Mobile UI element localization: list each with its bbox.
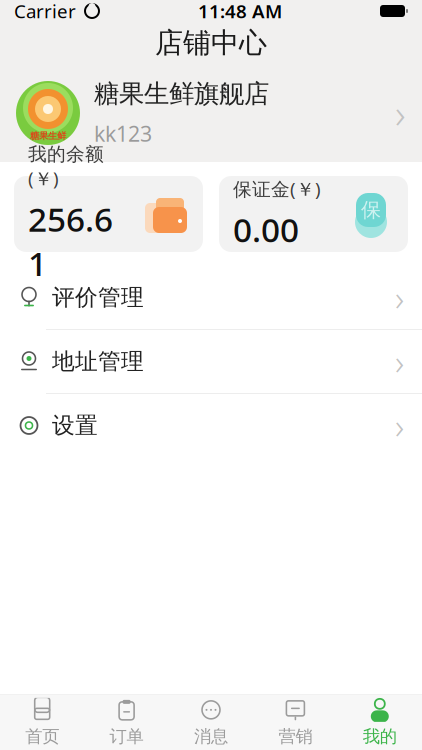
staticText: 首页 <box>25 726 59 747</box>
staticText: 我的余额(￥) <box>28 143 104 191</box>
button[interactable]: 我的 <box>338 695 422 750</box>
staticText: 糖果生鲜 <box>30 130 66 142</box>
staticText: 营销 <box>278 726 312 747</box>
staticText: kk123 <box>94 119 152 148</box>
button[interactable]: 地址管理 <box>0 330 422 394</box>
button[interactable]: 我的余额(￥) <box>14 176 203 252</box>
button[interactable]: 设置 <box>0 394 422 458</box>
staticText: 保证金(￥) <box>233 176 321 201</box>
staticText: 店铺中心 <box>155 26 267 60</box>
staticText: › <box>395 338 404 384</box>
staticText: › <box>395 274 404 320</box>
button[interactable]: 糖果生鲜 <box>0 64 422 162</box>
button[interactable]: 保证金(￥) <box>219 176 408 252</box>
button[interactable]: 消息 <box>169 695 253 750</box>
button[interactable]: 评价管理 <box>0 266 422 330</box>
staticText: 评价管理 <box>52 284 144 311</box>
staticText: 糖果生鲜旗舰店 <box>94 78 269 109</box>
staticText: 256.61 <box>28 197 113 285</box>
staticText: 地址管理 <box>52 348 144 375</box>
staticText: › <box>395 86 406 139</box>
button[interactable]: 营销 <box>253 695 338 750</box>
button[interactable]: 订单 <box>84 695 169 750</box>
button[interactable]: 首页 <box>0 695 84 750</box>
staticText: › <box>395 402 404 448</box>
staticText: 设置 <box>52 412 98 439</box>
staticText: 11:48 AM <box>198 0 282 23</box>
staticText: 我的 <box>363 726 397 747</box>
staticText: 消息 <box>194 726 228 747</box>
staticText: 订单 <box>110 726 144 747</box>
staticText: Carrier <box>14 0 76 23</box>
staticText: 0.00 <box>233 207 299 252</box>
staticText: 保 <box>361 198 381 222</box>
